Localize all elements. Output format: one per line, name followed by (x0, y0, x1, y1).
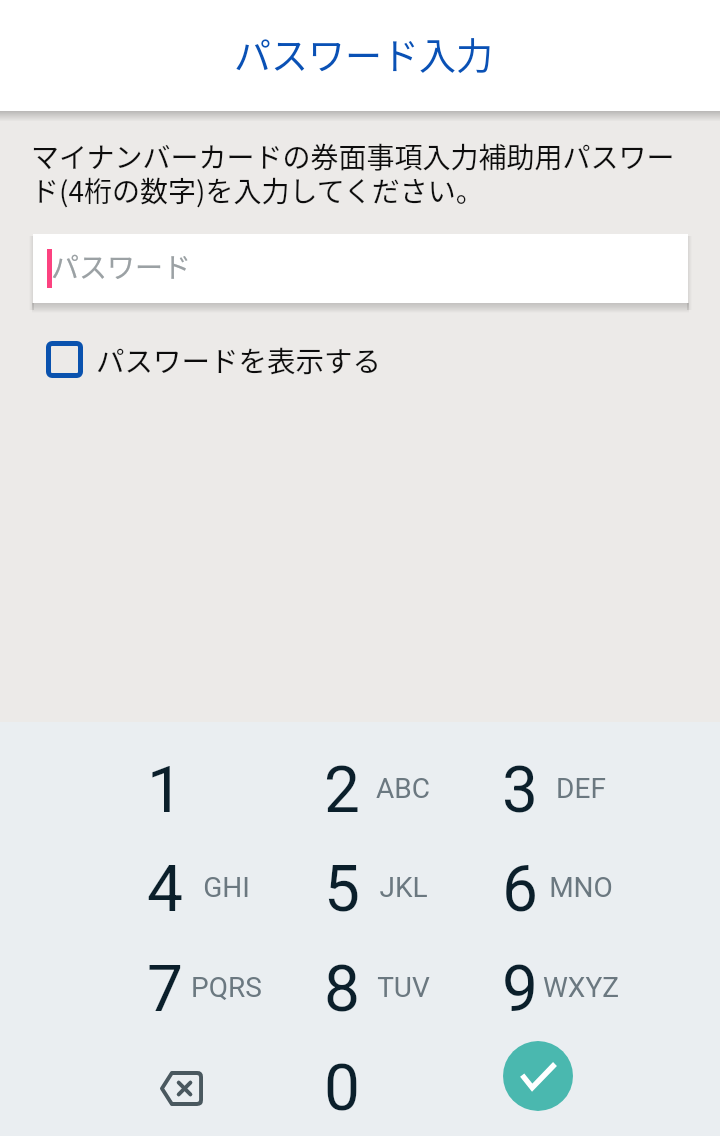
button[interactable]: 1 (94, 740, 272, 840)
staticText: 1 (147, 753, 183, 828)
button[interactable]: 8 (271, 939, 449, 1039)
staticText: 9 (502, 952, 538, 1027)
staticText: MNO (549, 871, 613, 904)
button[interactable]: パスワードを表示する (46, 339, 382, 380)
staticText: GHI (203, 871, 250, 904)
button[interactable]: 3 (449, 740, 627, 840)
staticText: TUV (377, 971, 430, 1004)
staticText: 5 (324, 852, 360, 927)
button[interactable]: OK, confirm password (449, 1038, 627, 1136)
button[interactable]: 4 (94, 839, 272, 939)
staticText: 0 (324, 1051, 360, 1126)
staticText: パスワード (51, 246, 192, 287)
staticText: パスワード入力 (234, 27, 493, 81)
button[interactable]: 2 (271, 740, 449, 840)
staticText: 6 (502, 852, 538, 927)
staticText: マイナンバーカードの券面事項入力補助用パスワー ド(4桁の数字)を入力してくださ… (31, 136, 675, 210)
staticText: ABC (376, 772, 430, 805)
staticText: 3 (502, 753, 538, 828)
staticText: 4 (147, 852, 183, 927)
staticText: パスワードを表示する (96, 339, 382, 380)
staticText: 2 (324, 753, 360, 828)
staticText: JKL (379, 871, 428, 904)
button[interactable]: Delete (94, 1038, 272, 1136)
staticText: PQRS (191, 971, 262, 1004)
button[interactable]: 9 (449, 939, 627, 1039)
staticText: WXYZ (543, 971, 619, 1004)
button[interactable]: 6 (449, 839, 627, 939)
button[interactable]: 0 (271, 1038, 449, 1136)
button[interactable]: 5 (271, 839, 449, 939)
staticText: DEF (556, 772, 606, 805)
button[interactable]: 7 (94, 939, 272, 1039)
staticText: 7 (147, 952, 183, 1027)
staticText: 8 (324, 952, 360, 1027)
button[interactable]: Password input field (33, 234, 688, 303)
